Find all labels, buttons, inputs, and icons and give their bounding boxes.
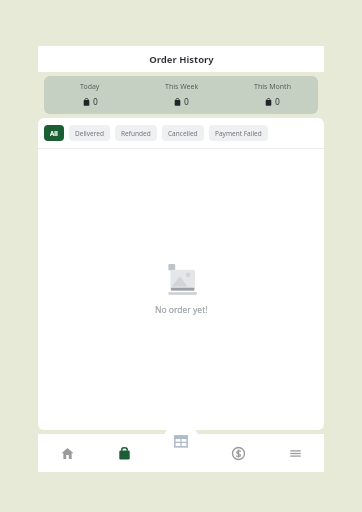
staticText: All [50,129,58,138]
staticText: 0 [93,96,98,108]
button[interactable]: Delivered [69,125,110,141]
button[interactable]: Store [163,423,199,459]
staticText: Refunded [121,129,151,138]
button[interactable]: Home [38,434,96,472]
button[interactable]: Cancelled [162,125,204,141]
button[interactable]: Today [44,76,136,114]
staticText: Order History [149,53,214,66]
staticText: This Week [165,82,199,92]
staticText: 0 [184,96,189,108]
button[interactable]: Menu [267,434,324,472]
button[interactable]: This Week [136,76,227,114]
button[interactable]: Payment Failed [209,125,268,141]
staticText: This Month [254,82,291,92]
button[interactable]: All [44,125,64,141]
button[interactable]: Payments [210,434,267,472]
staticText: Today [80,82,100,92]
staticText: Delivered [75,129,104,138]
button[interactable]: Orders [96,434,153,472]
staticText: 0 [275,96,280,108]
staticText: Payment Failed [215,129,262,138]
staticText: Cancelled [168,129,198,138]
button[interactable]: This Month [227,76,318,114]
button[interactable]: Refunded [115,125,157,141]
staticText: No order yet! [155,304,208,316]
